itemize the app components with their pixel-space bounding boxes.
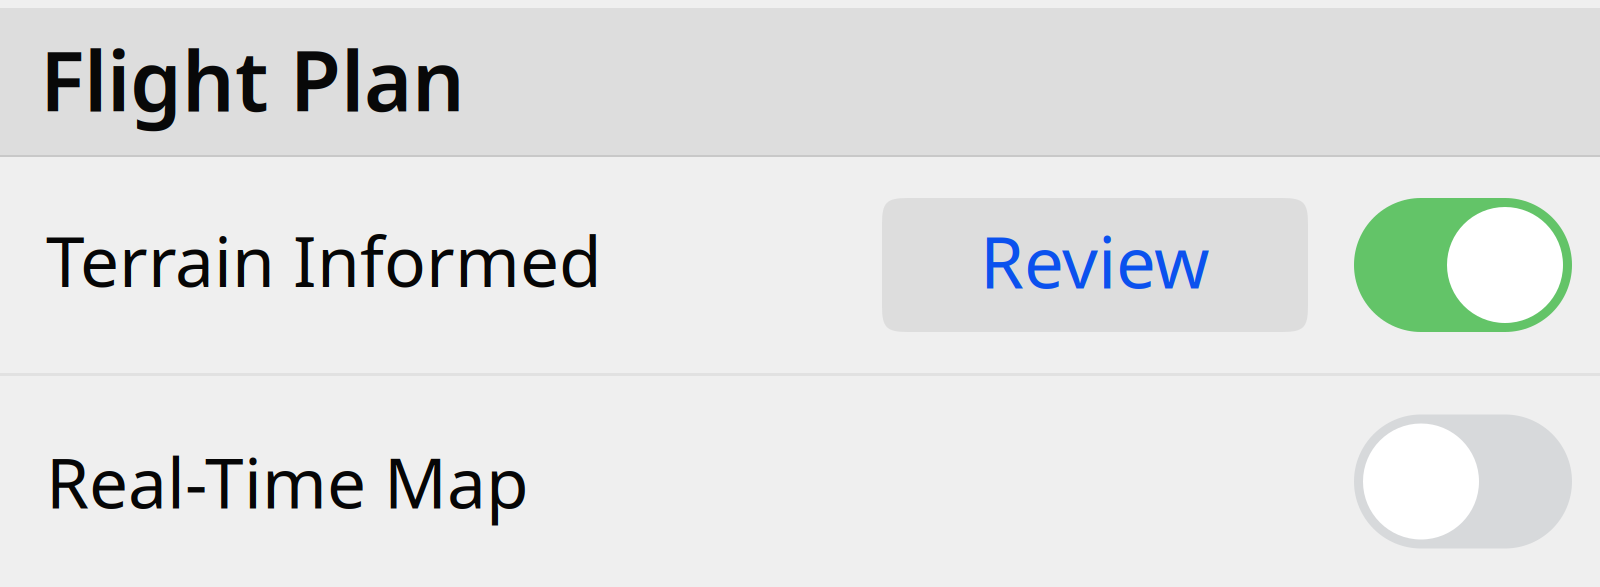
- button[interactable]: Review: [882, 198, 1308, 332]
- staticText: Flight Plan: [40, 24, 465, 134]
- button[interactable]: Terrain Informed: [1354, 198, 1572, 332]
- staticText: Review: [980, 214, 1210, 308]
- button[interactable]: Real-Time Map: [1354, 414, 1572, 548]
- staticText: Terrain Informed: [46, 214, 602, 306]
- staticText: Real-Time Map: [46, 435, 529, 528]
